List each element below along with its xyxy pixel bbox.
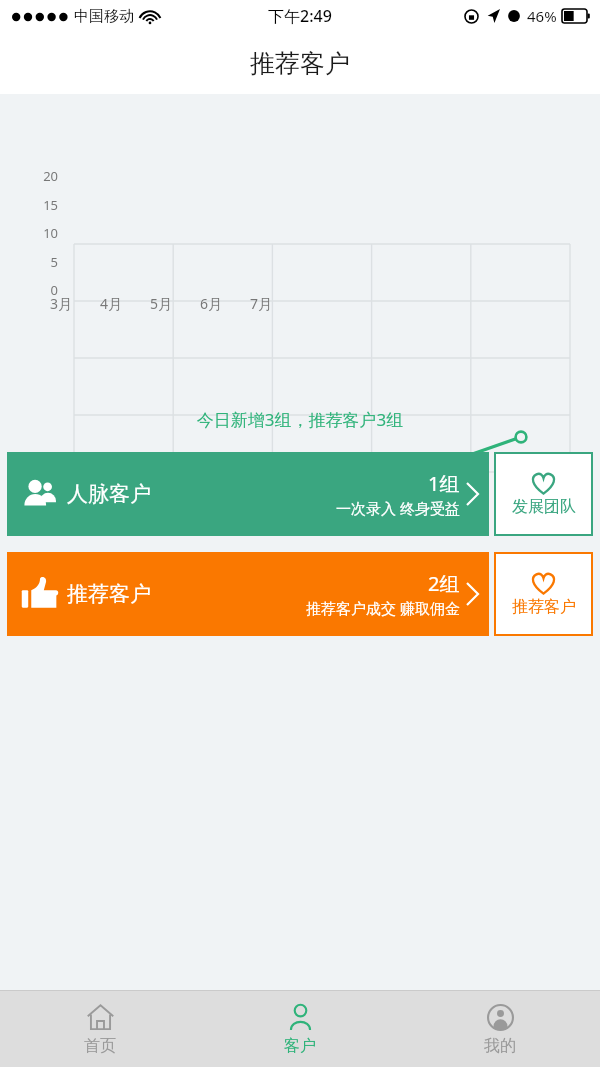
staticText: 首页 <box>84 1036 116 1056</box>
staticText: 0 <box>30 281 58 299</box>
staticText: 5月 <box>145 294 177 313</box>
staticText: 10 <box>30 224 58 242</box>
staticText: 1组 <box>428 470 460 497</box>
staticText: 15 <box>30 196 58 214</box>
staticText: 46% <box>527 6 557 26</box>
button[interactable]: 推荐客户 <box>494 552 593 636</box>
staticText: 我的 <box>484 1036 516 1056</box>
staticText: 发展团队 <box>512 497 576 517</box>
staticText: 推荐客户成交 赚取佣金 <box>306 598 460 618</box>
staticText: 推荐客户 <box>250 48 350 79</box>
staticText: 客户 <box>284 1036 316 1056</box>
staticText: 推荐客户 <box>67 581 151 607</box>
staticText: 2组 <box>428 570 460 597</box>
staticText: 4月 <box>95 294 127 313</box>
staticText: 一次录入 终身受益 <box>336 498 460 518</box>
staticText: 7月 <box>245 294 277 313</box>
staticText: 3月 <box>45 294 77 313</box>
staticText: 下午2:49 <box>268 5 332 27</box>
button[interactable]: 我的 <box>400 991 600 1067</box>
staticText: 20 <box>30 167 58 185</box>
button[interactable]: 客户 <box>200 991 400 1067</box>
button[interactable]: 发展团队 <box>494 452 593 536</box>
button[interactable]: 首页 <box>0 991 200 1067</box>
staticText: 6月 <box>195 294 227 313</box>
staticText: 人脉客户 <box>67 481 151 507</box>
staticText: 中国移动 <box>74 7 134 26</box>
button[interactable]: 推荐客户 <box>7 552 489 636</box>
staticText: 推荐客户 <box>512 597 576 617</box>
staticText: 5 <box>30 253 58 271</box>
staticText: 今日新增3组，推荐客户3组 <box>0 408 600 431</box>
button[interactable]: 人脉客户 <box>7 452 489 536</box>
